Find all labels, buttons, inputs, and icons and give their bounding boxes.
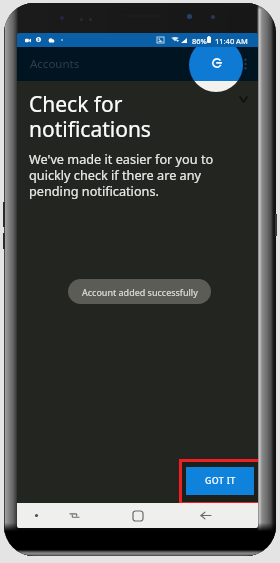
button[interactable]: Home <box>122 503 154 528</box>
staticText: Check for notifications <box>29 90 151 143</box>
button[interactable]: Menu <box>20 503 52 528</box>
button[interactable]: Recent apps <box>58 503 90 528</box>
staticText: GOT IT <box>205 475 236 487</box>
staticText: Account added successfully <box>82 286 198 298</box>
staticText: 11:40 AM <box>215 36 248 46</box>
button[interactable]: Back <box>189 503 221 528</box>
button[interactable]: Refresh <box>189 38 243 92</box>
button[interactable]: GOT IT <box>179 459 258 505</box>
staticText: We've made it easier for you to quickly … <box>29 150 214 199</box>
staticText: 86% <box>192 36 207 46</box>
staticText: Accounts <box>30 56 80 72</box>
